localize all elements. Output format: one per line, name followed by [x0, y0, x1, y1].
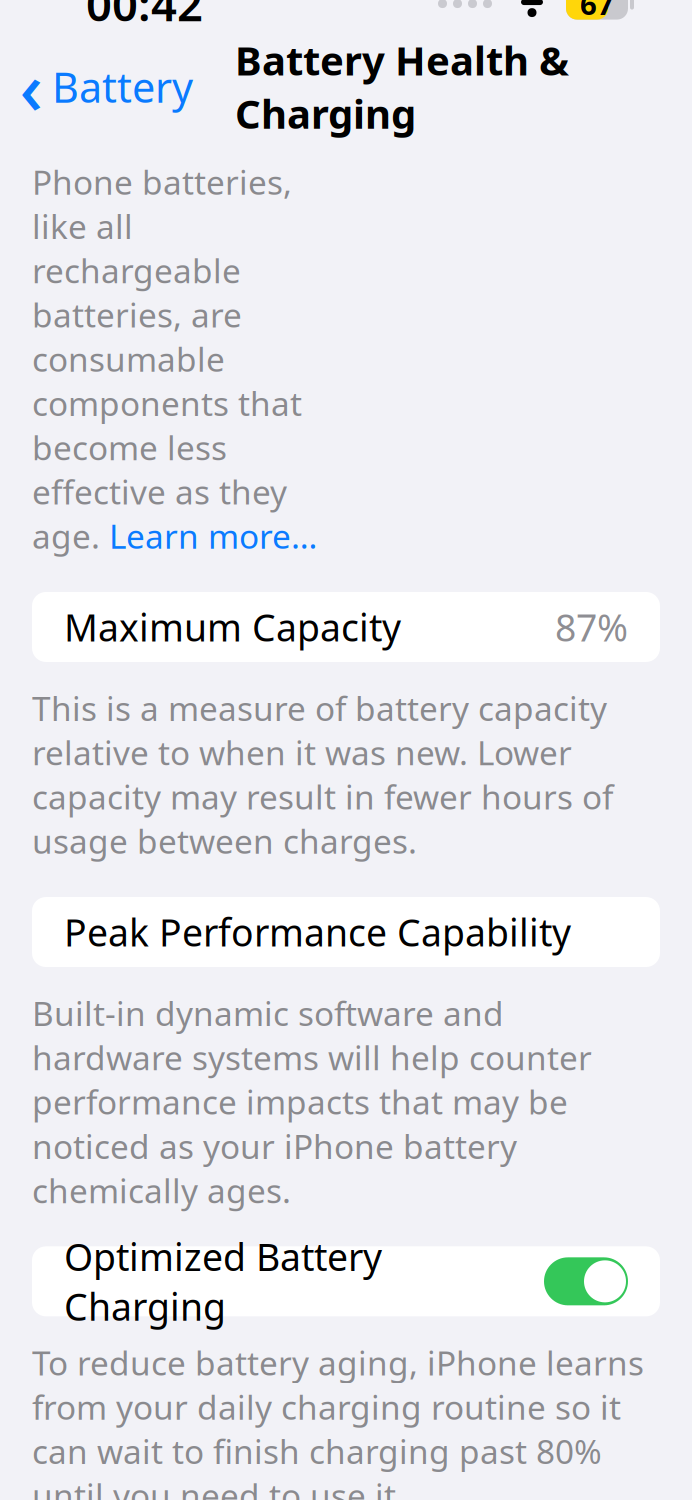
staticText: Built-in dynamic software and hardware s… [32, 991, 592, 1212]
staticText: To reduce battery aging, iPhone learns f… [32, 1340, 644, 1500]
button[interactable]: ‹ [0, 51, 203, 122]
staticText: This is a measure of battery capacity re… [32, 686, 613, 863]
staticText: Battery [52, 59, 193, 114]
staticText: ‹ [19, 39, 42, 134]
staticText: age. [32, 514, 109, 558]
button[interactable]: Peak Performance Capability [32, 897, 660, 967]
staticText: Learn more… [109, 514, 317, 558]
staticText: 87% [555, 602, 628, 652]
staticText: Peak Performance Capability [64, 907, 571, 957]
staticText: Maximum Capacity [64, 602, 401, 652]
staticText: Optimized Battery Charging [64, 1232, 382, 1331]
button[interactable]: Optimized Battery Charging [544, 1257, 628, 1305]
button[interactable]: Maximum Capacity [32, 592, 660, 662]
button[interactable]: Optimized Battery Charging [32, 1246, 660, 1316]
button[interactable]: Learn more… [109, 514, 317, 558]
staticText: 00:42 [86, 0, 203, 34]
staticText: Battery Health & Charging [235, 33, 569, 140]
staticText: 67 [580, 0, 614, 23]
staticText: Phone batteries, like all rechargeable b… [32, 160, 302, 514]
